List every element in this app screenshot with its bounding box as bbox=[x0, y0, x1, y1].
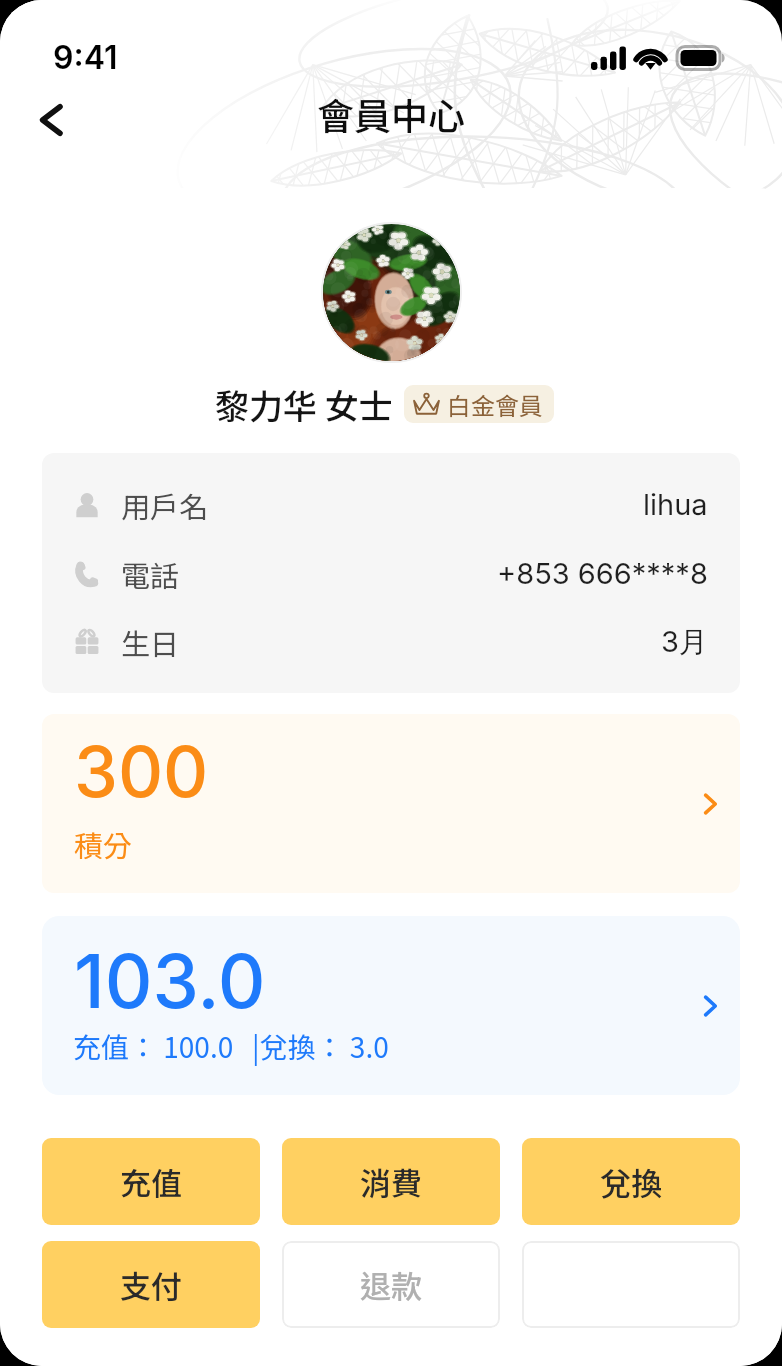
staticText: 白金會員 bbox=[447, 387, 543, 422]
staticText: 充值： 100.0 |兌換： 3.0 bbox=[73, 1026, 389, 1067]
staticText: 用戶名 bbox=[121, 484, 209, 526]
button[interactable]: Back bbox=[24, 93, 78, 147]
button[interactable]: 兌換 bbox=[522, 1138, 740, 1225]
staticText: 支付 bbox=[120, 1262, 182, 1307]
button[interactable]: 充值 bbox=[42, 1138, 260, 1225]
staticText: 會員中心 bbox=[317, 87, 465, 141]
staticText: 黎力华 女士 bbox=[215, 380, 393, 429]
staticText: 兌換 bbox=[600, 1159, 662, 1204]
staticText: 生日 bbox=[121, 621, 180, 663]
staticText: 103.0 bbox=[74, 936, 266, 1026]
button[interactable]: 消費 bbox=[282, 1138, 500, 1225]
staticText: 9:41 bbox=[53, 38, 118, 77]
button[interactable]: 退款 bbox=[282, 1241, 500, 1328]
staticText: 積分 bbox=[74, 823, 133, 865]
staticText: +853 666****8 bbox=[497, 556, 708, 591]
staticText: 退款 bbox=[360, 1262, 422, 1307]
staticText: 充值 bbox=[120, 1159, 182, 1204]
button[interactable]: 支付 bbox=[42, 1241, 260, 1328]
staticText: 消費 bbox=[360, 1159, 422, 1204]
button[interactable] bbox=[522, 1241, 740, 1328]
staticText: lihua bbox=[643, 487, 708, 522]
button[interactable]: 103.0 bbox=[42, 916, 740, 1095]
staticText: 300 bbox=[74, 729, 209, 814]
button[interactable]: 300 bbox=[42, 714, 740, 893]
staticText: 3月 bbox=[661, 624, 708, 661]
staticText: 電話 bbox=[121, 553, 180, 595]
button[interactable]: 白金會員 bbox=[404, 385, 554, 423]
